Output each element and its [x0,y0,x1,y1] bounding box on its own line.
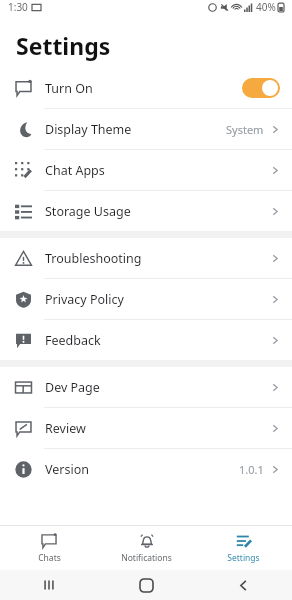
staticText: Dev Page [45,379,100,396]
button[interactable]: Chats [0,526,98,570]
staticText: Review [45,420,86,437]
staticText: System [226,122,264,137]
button[interactable]: Review [0,408,292,448]
button[interactable]: Feedback [0,320,292,360]
staticText: Settings [16,30,111,61]
staticText: Privacy Policy [45,291,124,308]
staticText: Version [45,461,89,478]
staticText: Turn On [45,80,93,97]
button[interactable]: Dev Page [0,367,292,407]
button[interactable]: Chat Apps [0,150,292,190]
button[interactable]: Notifications [98,526,195,570]
staticText: Display Theme [45,121,132,138]
staticText: Storage Usage [45,203,131,220]
staticText: 40% [256,0,276,14]
staticText: 1.0.1 [239,462,264,477]
button[interactable]: Troubleshooting [0,238,292,278]
button[interactable]: Home [98,570,195,600]
button[interactable]: Privacy Policy [0,279,292,319]
button[interactable]: Version [0,449,292,489]
other: Turn On toggle [242,78,280,98]
staticText: Notifications [121,552,172,564]
staticText: 1:30 [8,0,28,14]
staticText: Chat Apps [45,162,105,179]
staticText: Chats [38,552,61,564]
button[interactable]: Recent apps [0,570,98,600]
button[interactable]: Turn On [0,68,292,108]
staticText: Feedback [45,332,101,349]
button[interactable]: Back [195,570,292,600]
button[interactable]: Settings [195,526,292,570]
staticText: Settings [227,552,260,564]
staticText: Troubleshooting [45,250,142,267]
button[interactable]: Display Theme [0,109,292,149]
button[interactable]: Storage Usage [0,191,292,231]
